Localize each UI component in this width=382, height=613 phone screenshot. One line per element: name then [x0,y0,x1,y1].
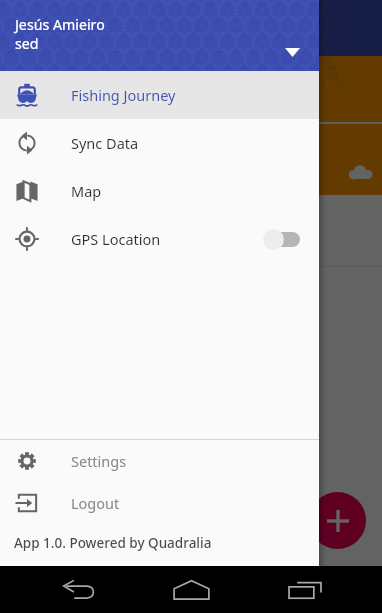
button[interactable]: Back [55,566,104,613]
staticText: App 1.0. Powered by Quadralia [14,534,212,552]
staticText: Map [71,181,102,201]
button[interactable]: Recents [280,566,329,613]
button[interactable]: Fishing Journey [0,71,319,119]
button[interactable]: Map [0,167,319,215]
button[interactable]: Home [167,566,216,613]
staticText: Jesús Amieiro sed [15,15,105,53]
staticText: Settings [71,451,127,471]
staticText: Sync Data [71,133,139,153]
staticText: Fishing Journey [71,85,176,105]
button[interactable]: GPS Location [0,215,319,263]
staticText: Logout [71,493,120,513]
staticText: GPS Location [71,229,161,249]
button[interactable]: Sync Data [0,119,319,167]
button[interactable]: Settings [0,440,319,482]
button[interactable]: Logout [0,482,319,524]
button[interactable]: Add [309,492,366,549]
